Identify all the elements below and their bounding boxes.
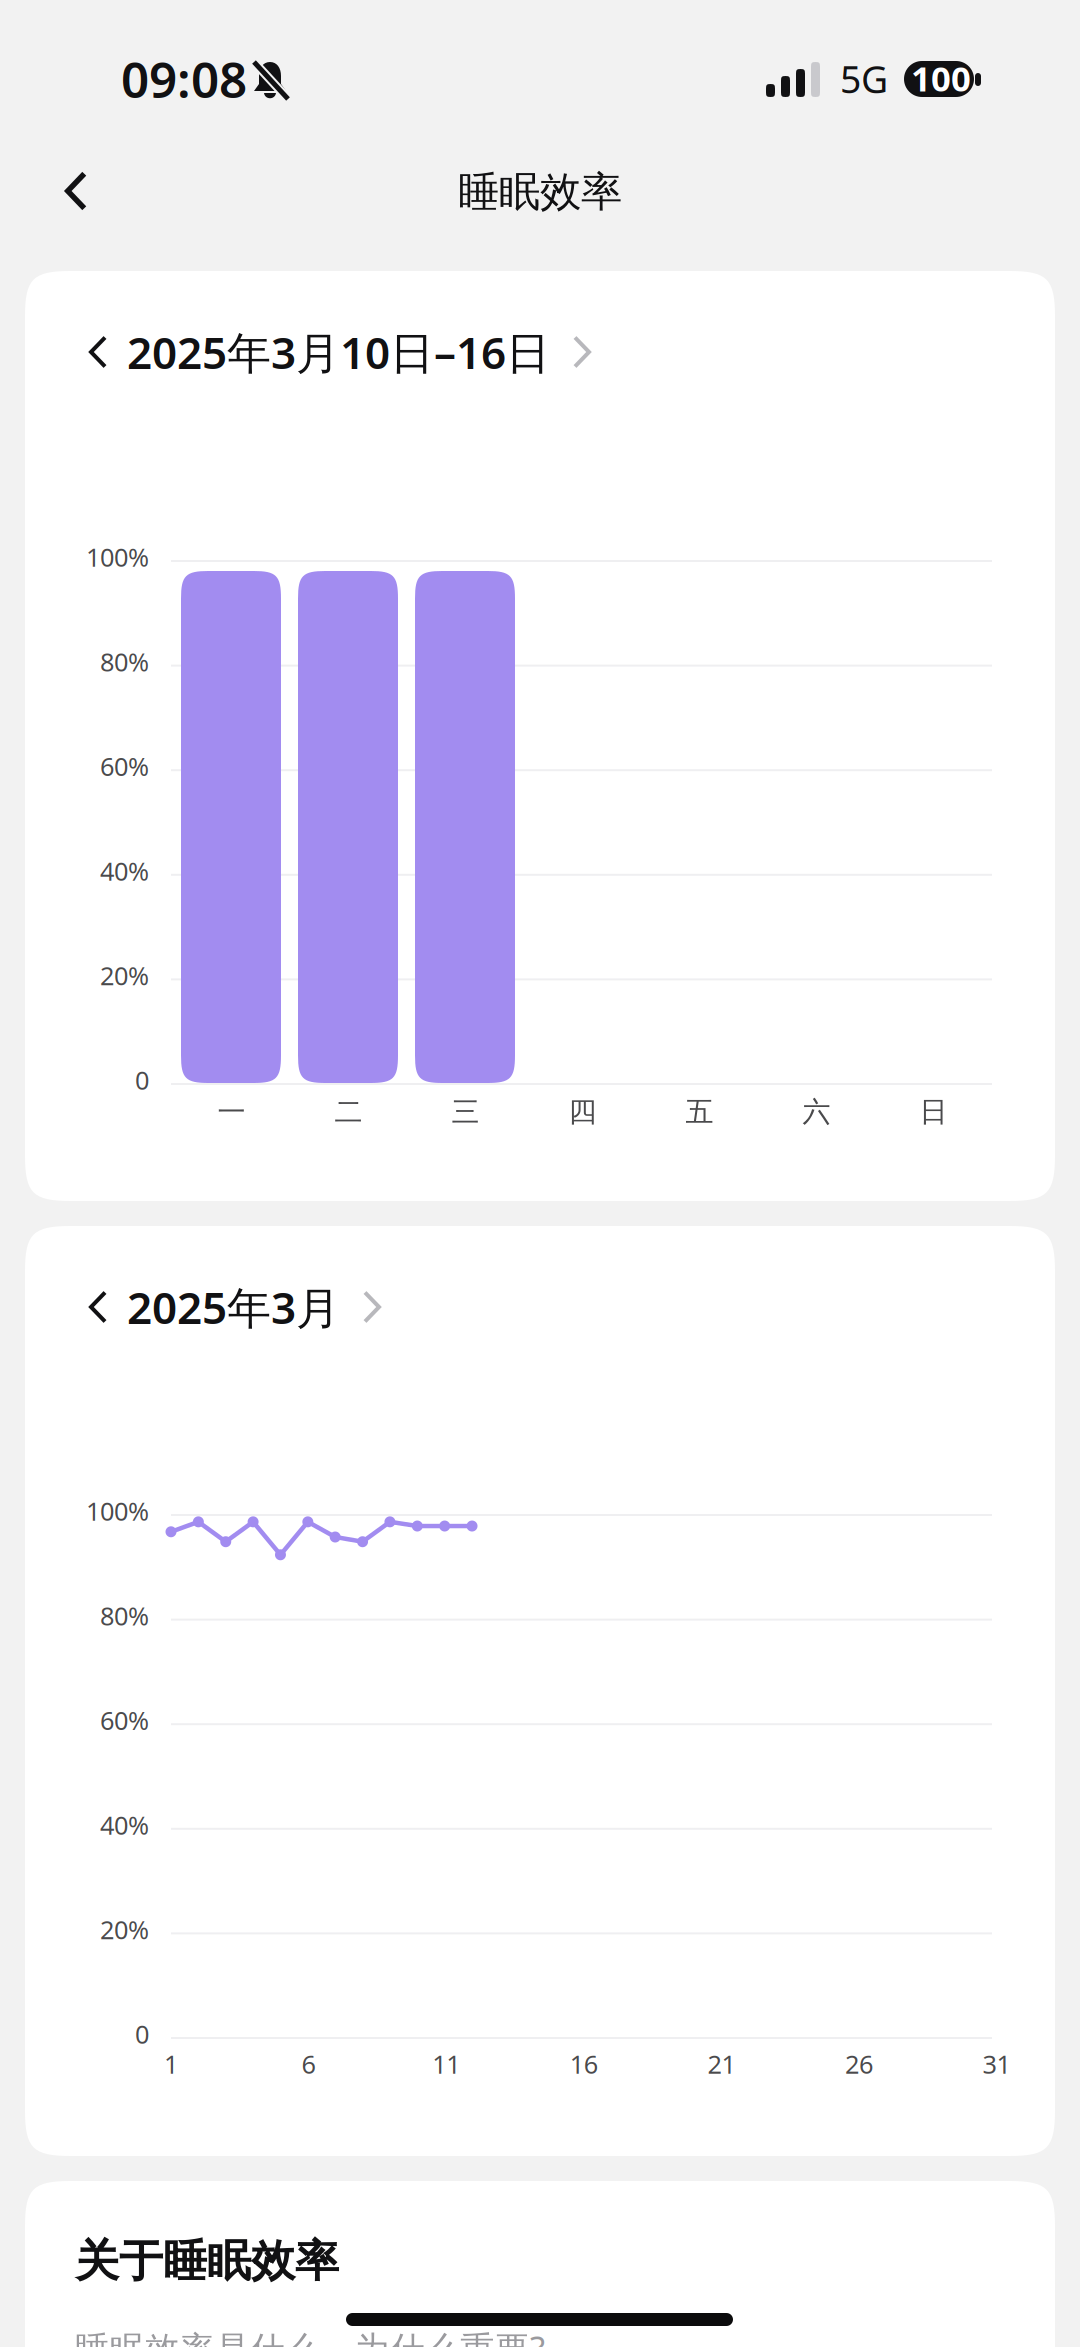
- staticText: 2025年3月10日–16日: [127, 323, 550, 381]
- staticText: 09:08: [121, 46, 247, 111]
- staticText: 2025年3月: [127, 1278, 340, 1336]
- button[interactable]: Next month: [340, 1277, 404, 1337]
- staticText: 100%: [86, 540, 149, 574]
- staticText: 80%: [100, 645, 149, 678]
- staticText: 60%: [100, 749, 149, 783]
- staticText: 5G: [840, 54, 888, 104]
- staticText: 四: [568, 1095, 596, 1129]
- staticText: 关于睡眠效率: [75, 2234, 339, 2288]
- staticText: 11: [432, 2047, 460, 2081]
- staticText: 26: [845, 2047, 873, 2081]
- staticText: 日: [919, 1095, 947, 1129]
- staticText: 睡眠效率是什么，为什么重要?: [75, 2325, 545, 2347]
- staticText: 一: [217, 1095, 245, 1129]
- button[interactable]: Next week: [550, 322, 614, 382]
- staticText: 31: [983, 2047, 1011, 2081]
- staticText: 0: [135, 2017, 149, 2051]
- button[interactable]: Back: [31, 146, 121, 236]
- staticText: 20%: [100, 959, 149, 992]
- staticText: 21: [707, 2047, 735, 2081]
- staticText: 100: [911, 55, 971, 101]
- staticText: 40%: [100, 854, 149, 888]
- staticText: 6: [302, 2047, 316, 2081]
- staticText: 三: [451, 1095, 479, 1129]
- staticText: 60%: [100, 1703, 149, 1737]
- button[interactable]: Previous week: [69, 322, 127, 382]
- staticText: 1: [164, 2047, 178, 2081]
- staticText: 16: [570, 2047, 598, 2081]
- staticText: 睡眠效率: [458, 167, 622, 217]
- staticText: 六: [802, 1095, 830, 1129]
- staticText: 五: [685, 1095, 713, 1129]
- button[interactable]: Previous month: [69, 1277, 127, 1337]
- staticText: 80%: [100, 1599, 149, 1632]
- staticText: 20%: [100, 1913, 149, 1946]
- staticText: 二: [334, 1095, 362, 1129]
- staticText: 40%: [100, 1808, 149, 1842]
- staticText: 0: [135, 1063, 149, 1097]
- staticText: 100%: [86, 1494, 149, 1528]
